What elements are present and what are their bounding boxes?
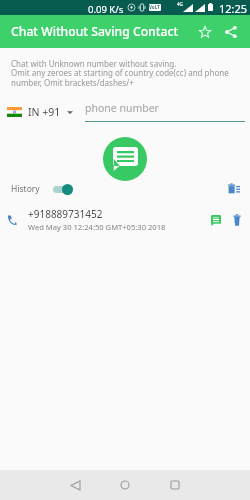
staticText: +918889731452 [28, 207, 103, 221]
staticText: phone number [85, 101, 159, 115]
button[interactable]: Chat [207, 211, 225, 229]
staticText: Chat Without Saving Contact [11, 23, 179, 40]
button[interactable]: Back [61, 471, 89, 499]
button[interactable]: IN +91 [7, 105, 73, 119]
staticText: History [11, 183, 40, 195]
button[interactable]: +918889731452 [0, 206, 250, 233]
staticText: IN +91 [28, 105, 61, 119]
button[interactable]: Delete all history [224, 181, 244, 197]
button[interactable]: Recents [161, 471, 189, 499]
staticText: VoLTE [149, 4, 161, 11]
button[interactable]: Favourite [192, 19, 218, 45]
staticText: 0.09 K/s [88, 3, 124, 16]
button[interactable]: Share [218, 19, 244, 45]
button[interactable]: Delete [228, 211, 246, 229]
staticText: 4G [177, 1, 183, 7]
button[interactable] [53, 183, 75, 195]
staticText: 12:25 [219, 1, 248, 16]
button[interactable]: Start chat [103, 137, 147, 181]
button[interactable]: Home [111, 471, 139, 499]
staticText: Chat with Unknown number without saving.… [11, 58, 229, 89]
staticText: Wed May 30 12:24:50 GMT+05:30 2018 [28, 222, 166, 232]
